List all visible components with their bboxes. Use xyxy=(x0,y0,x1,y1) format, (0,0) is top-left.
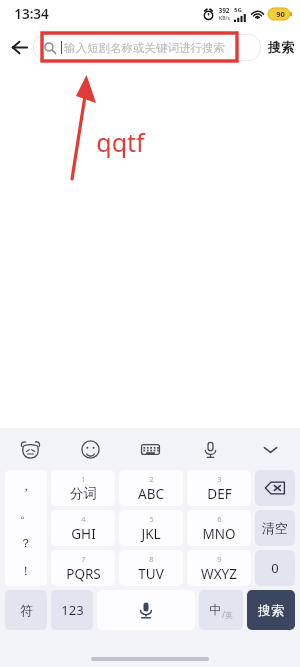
staticText: ！ xyxy=(20,563,32,578)
button[interactable]: 7 xyxy=(51,550,115,586)
staticText: 123 xyxy=(61,601,84,619)
staticText: GHI xyxy=(71,525,96,543)
staticText: 7 xyxy=(81,554,86,564)
staticText: 符 xyxy=(20,602,33,618)
staticText: PQRS xyxy=(66,565,101,583)
button[interactable]: ， xyxy=(5,470,47,586)
staticText: ， xyxy=(20,478,32,493)
button[interactable]: 8 xyxy=(119,550,183,586)
staticText: 13:34 xyxy=(14,5,49,23)
staticText: /英 xyxy=(222,609,233,620)
staticText: 分词 xyxy=(70,485,97,502)
staticText: 搜索 xyxy=(258,602,284,618)
staticText: 4 xyxy=(81,514,86,524)
button[interactable]: Voice input xyxy=(180,428,240,470)
button[interactable]: 中 xyxy=(199,590,243,630)
button[interactable]: 搜索 xyxy=(247,590,295,630)
button[interactable]: 清空 xyxy=(255,510,295,546)
staticText: 9 xyxy=(217,554,222,564)
staticText: 0 xyxy=(271,559,279,577)
button[interactable]: Keyboard layout xyxy=(120,428,180,470)
staticText: 8 xyxy=(149,554,154,564)
staticText: TUV xyxy=(138,565,164,583)
staticText: 2 xyxy=(149,474,154,484)
button[interactable]: 3 xyxy=(187,470,251,506)
button[interactable]: 4 xyxy=(51,510,115,546)
staticText: 中 xyxy=(209,602,222,618)
staticText: KB/s xyxy=(219,15,230,22)
staticText: 搜索 xyxy=(268,39,294,55)
staticText: 5G xyxy=(234,6,242,14)
staticText: 392 xyxy=(218,6,230,15)
staticText: 清空 xyxy=(262,520,288,536)
button[interactable]: 6 xyxy=(187,510,251,546)
button[interactable]: 0 xyxy=(255,550,295,586)
staticText: 5 xyxy=(149,514,154,524)
staticText: 6 xyxy=(217,514,222,524)
staticText: 90 xyxy=(276,9,285,19)
button[interactable]: 搜索 xyxy=(262,34,300,60)
staticText: ？ xyxy=(20,535,32,550)
button[interactable]: 符 xyxy=(5,590,47,630)
staticText: DEF xyxy=(207,485,232,503)
button[interactable]: 123 xyxy=(51,590,93,630)
staticText: JKL xyxy=(141,525,161,543)
staticText: WXYZ xyxy=(201,565,237,583)
button[interactable]: Voice input xyxy=(97,590,195,630)
button[interactable]: 1 xyxy=(51,470,115,506)
staticText: 输入短剧名称或关键词进行搜索 xyxy=(64,41,225,55)
button[interactable]: 2 xyxy=(119,470,183,506)
button[interactable]: 9 xyxy=(187,550,251,586)
button[interactable]: 输入短剧名称或关键词进行搜索 xyxy=(33,34,261,61)
button[interactable]: Hide keyboard xyxy=(240,428,300,470)
button[interactable]: Back xyxy=(5,33,34,62)
button[interactable]: Baidu input method xyxy=(0,428,60,470)
button[interactable]: Backspace xyxy=(255,470,295,506)
button[interactable]: 5 xyxy=(119,510,183,546)
staticText: MNO xyxy=(202,525,236,543)
staticText: 。 xyxy=(20,506,32,521)
staticText: qqtf xyxy=(96,125,145,159)
staticText: 1 xyxy=(81,474,86,484)
button[interactable]: Emoji xyxy=(60,428,120,470)
staticText: 3 xyxy=(217,474,222,484)
staticText: ABC xyxy=(138,485,164,503)
